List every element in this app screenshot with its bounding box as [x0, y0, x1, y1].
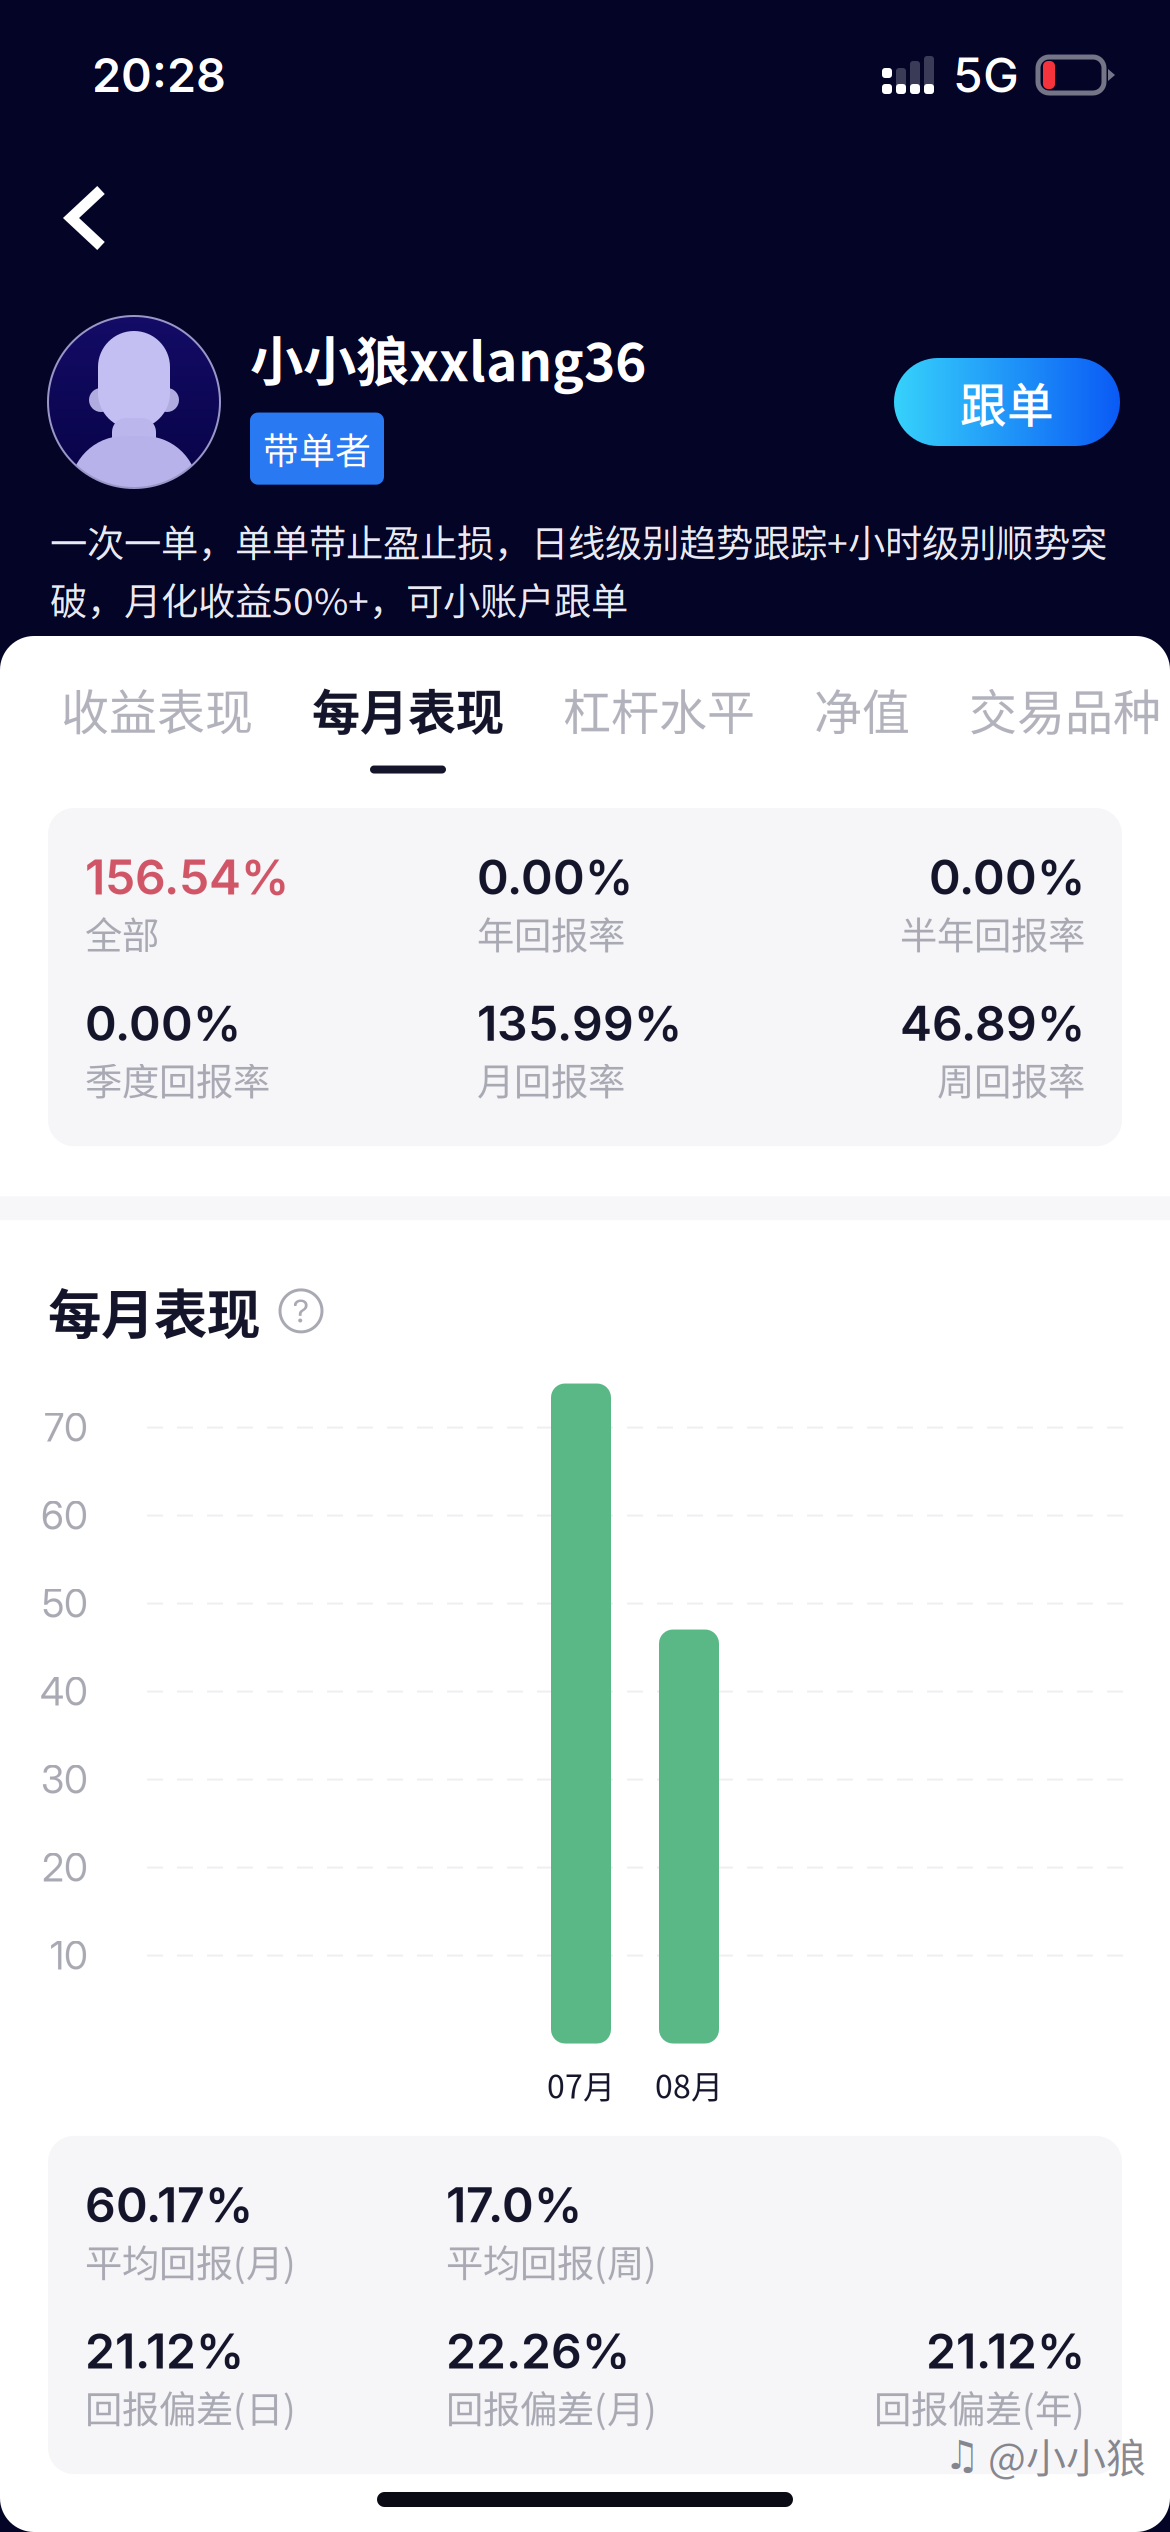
button[interactable]: 每月表现: [312, 674, 504, 794]
staticText: 每月表现: [48, 1272, 260, 1349]
staticText: 20: [42, 1844, 88, 1891]
staticText: 每月表现: [312, 674, 504, 743]
staticText: 17.0%: [446, 2176, 582, 2234]
staticText: 回报偏差(日): [85, 2380, 296, 2434]
button[interactable]: 收益表现: [61, 674, 253, 794]
button[interactable]: 净值: [814, 674, 910, 794]
staticText: 半年回报率: [900, 906, 1085, 960]
staticText: 60: [41, 1492, 88, 1539]
button[interactable]: Back: [0, 150, 190, 316]
staticText: 60.17%: [85, 2176, 253, 2234]
staticText: ♫: [944, 2432, 980, 2478]
staticText: 收益表现: [61, 674, 253, 743]
staticText: 全部: [85, 906, 159, 960]
staticText: 平均回报(周): [446, 2234, 657, 2288]
staticText: 净值: [814, 674, 910, 743]
staticText: 一次一单，单单带止盈止损，日线级别趋势跟踪+小时级别顺势突破，月化收益50%+，…: [50, 514, 1107, 626]
staticText: 0.00%: [85, 994, 241, 1052]
staticText: 回报偏差(月): [446, 2380, 657, 2434]
staticText: 08月: [655, 2061, 723, 2108]
staticText: 5G: [953, 46, 1019, 104]
staticText: 21.12%: [926, 2322, 1085, 2380]
staticText: 小小狼xxlang36: [250, 319, 646, 396]
staticText: 70: [44, 1404, 88, 1451]
staticText: 135.99%: [477, 994, 682, 1052]
staticText: 周回报率: [937, 1052, 1085, 1106]
button[interactable]: 跟单: [894, 358, 1120, 446]
staticText: 跟单: [960, 368, 1054, 436]
staticText: 156.54%: [85, 848, 289, 906]
staticText: 30: [41, 1756, 88, 1803]
button[interactable]: 交易品种: [969, 674, 1161, 794]
staticText: 平均回报(月): [85, 2234, 296, 2288]
button[interactable]: 杠杆水平: [563, 674, 755, 794]
staticText: 回报偏差(年): [874, 2380, 1085, 2434]
staticText: @小小狼: [988, 2426, 1146, 2484]
staticText: 50: [42, 1580, 88, 1627]
staticText: 0.00%: [477, 848, 633, 906]
staticText: 月回报率: [477, 1052, 625, 1106]
staticText: 杠杆水平: [563, 674, 755, 743]
staticText: 46.89%: [900, 994, 1085, 1052]
staticText: 22.26%: [446, 2322, 630, 2380]
staticText: 带单者: [263, 422, 371, 475]
staticText: 0.00%: [929, 848, 1085, 906]
staticText: 10: [50, 1932, 88, 1979]
staticText: 季度回报率: [85, 1052, 270, 1106]
staticText: 年回报率: [477, 906, 625, 960]
staticText: 20:28: [92, 47, 226, 103]
staticText: 40: [40, 1668, 88, 1715]
staticText: ?: [292, 1291, 309, 1330]
staticText: 交易品种: [969, 674, 1161, 743]
staticText: 07月: [547, 2061, 615, 2108]
staticText: 21.12%: [85, 2322, 244, 2380]
